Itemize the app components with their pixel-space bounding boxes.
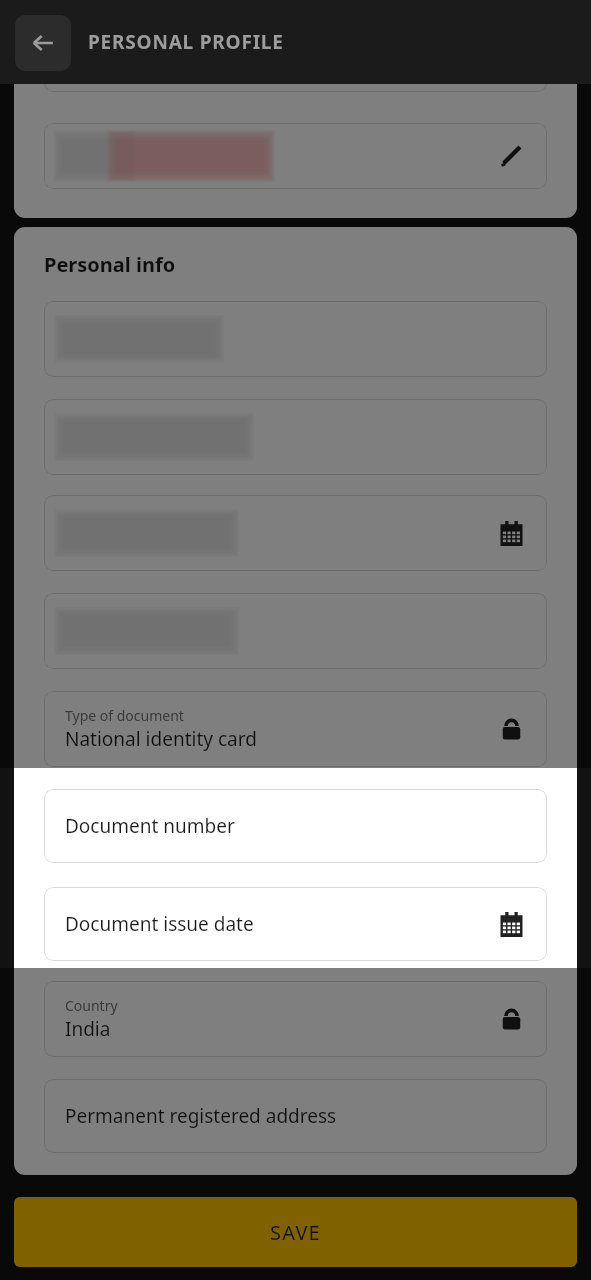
- staticText: PERSONAL PROFILE: [88, 29, 284, 55]
- button[interactable]: Edit: [493, 138, 529, 174]
- button[interactable]: Locked: [493, 711, 529, 747]
- staticText: Document issue date: [65, 911, 254, 937]
- button[interactable]: Permanent registered address: [44, 1079, 547, 1153]
- button[interactable]: Country: [44, 981, 547, 1057]
- button[interactable]: Type of document: [44, 691, 547, 767]
- button[interactable]: Pick date: [44, 495, 547, 571]
- staticText: India: [65, 1016, 111, 1042]
- button[interactable]: [44, 399, 547, 475]
- staticText: Permanent registered address: [65, 1103, 337, 1129]
- button[interactable]: [44, 301, 547, 377]
- staticText: Country: [65, 996, 118, 1015]
- button[interactable]: [44, 593, 547, 669]
- button[interactable]: Edit: [44, 123, 547, 189]
- button[interactable]: Document number: [44, 789, 547, 863]
- staticText: National identity card: [65, 726, 257, 752]
- button[interactable]: SAVE: [14, 1197, 577, 1267]
- button[interactable]: Document issue date: [44, 887, 547, 961]
- staticText: SAVE: [270, 1219, 321, 1246]
- button[interactable]: Back: [15, 15, 71, 71]
- button[interactable]: Locked: [493, 1001, 529, 1037]
- button[interactable]: Pick date: [493, 515, 529, 551]
- button[interactable]: Pick date: [493, 906, 529, 942]
- staticText: Personal info: [44, 251, 176, 278]
- staticText: Document number: [65, 813, 235, 839]
- staticText: Type of document: [65, 706, 184, 725]
